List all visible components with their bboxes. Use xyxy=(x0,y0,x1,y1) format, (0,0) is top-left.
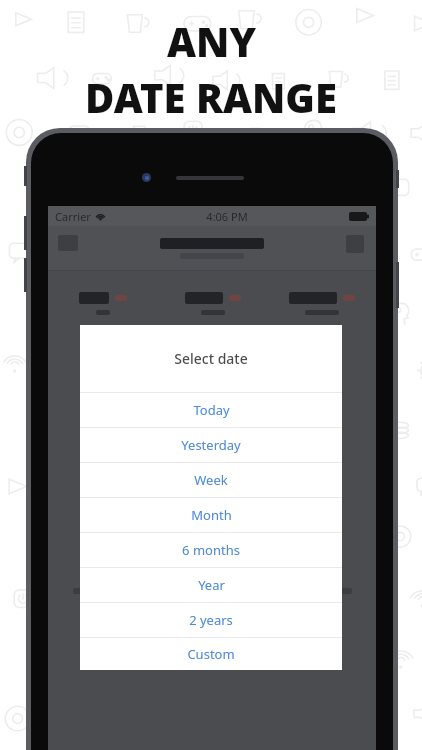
staticText: Yesterday xyxy=(181,436,241,454)
staticText: Year xyxy=(198,576,225,594)
button[interactable]: 6 months xyxy=(80,533,342,567)
staticText: Today xyxy=(193,401,230,419)
staticText: Custom xyxy=(187,645,235,663)
staticText: 4:06 PM xyxy=(206,209,248,224)
staticText: Month xyxy=(191,506,232,524)
staticText: Select date xyxy=(174,349,248,368)
staticText: 6 months xyxy=(182,541,240,559)
button[interactable]: 2 years xyxy=(80,603,342,637)
button[interactable]: Yesterday xyxy=(80,428,342,462)
button[interactable]: Week xyxy=(80,463,342,497)
button[interactable]: Custom xyxy=(80,638,342,670)
staticText: 2 years xyxy=(189,611,233,629)
button[interactable]: Today xyxy=(80,393,342,427)
staticText: ANY xyxy=(167,14,256,68)
button[interactable]: Year xyxy=(80,568,342,602)
staticText: DATE RANGE xyxy=(85,70,337,124)
staticText: Carrier xyxy=(55,209,91,224)
staticText: Week xyxy=(194,471,228,489)
button[interactable]: Month xyxy=(80,498,342,532)
